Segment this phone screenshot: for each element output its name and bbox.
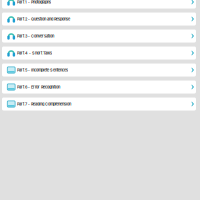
staticText: Part 6 - Error Recognition [17,85,60,89]
staticText: Part 1 - Photographs [17,0,51,4]
button[interactable]: Part 2 - Question and Response [2,12,196,25]
button[interactable]: Part 6 - Error Recognition [2,80,196,93]
button[interactable]: Part 4 - Short Talks [2,46,196,59]
staticText: Part 5 - Incomplete Sentences [17,68,68,72]
button[interactable]: Part 3 - Conversation [2,29,196,42]
staticText: Part 2 - Question and Response [17,17,70,21]
button[interactable]: Part 7 - Reading Comprehension [2,97,196,110]
button[interactable]: Part 1 - Photographs [2,0,196,8]
staticText: Part 4 - Short Talks [17,51,52,55]
button[interactable]: Part 5 - Incomplete Sentences [2,63,196,76]
staticText: Part 7 - Reading Comprehension [17,102,71,106]
staticText: Part 3 - Conversation [17,34,54,38]
